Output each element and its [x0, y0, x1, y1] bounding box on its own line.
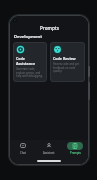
- staticText: Development: [14, 34, 43, 40]
- staticText: Prompts: [70, 151, 81, 155]
- staticText: Generate code, explain syntax, and help …: [16, 67, 44, 77]
- staticText: Code Review: [53, 56, 76, 61]
- button[interactable]: Prompts: [62, 140, 88, 157]
- button[interactable]: Code Review: [50, 42, 85, 82]
- other: Prompts: [72, 143, 78, 149]
- button[interactable]: Assistant: [36, 140, 62, 157]
- staticText: Chat: [20, 151, 26, 155]
- button[interactable]: Code Assistance: [13, 42, 47, 82]
- staticText: Code Assistance: [16, 56, 44, 66]
- button[interactable]: Chat: [10, 140, 36, 157]
- other: Assistant: [46, 143, 52, 149]
- other: Chat: [20, 143, 26, 149]
- staticText: Prompts: [40, 25, 59, 31]
- staticText: Assistant: [43, 151, 55, 155]
- staticText: Review code and get feedback on code qua…: [53, 62, 82, 72]
